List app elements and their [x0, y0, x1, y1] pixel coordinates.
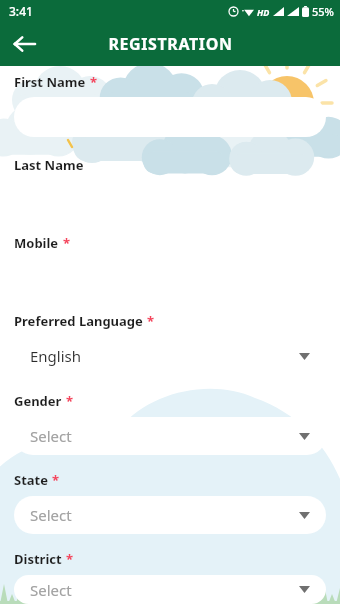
- button[interactable]: Select: [14, 575, 326, 604]
- staticText: REGISTRATION: [108, 33, 233, 55]
- staticText: 3:41: [9, 3, 33, 19]
- staticText: District: [14, 550, 62, 568]
- button[interactable]: Select: [14, 417, 326, 455]
- staticText: HD: [257, 6, 270, 18]
- staticText: First Name: [14, 73, 86, 91]
- button[interactable]: Select: [14, 496, 326, 534]
- staticText: Mobile: [14, 234, 59, 252]
- staticText: Preferred Language: [14, 312, 143, 330]
- staticText: *: [66, 550, 74, 568]
- staticText: *: [52, 471, 60, 489]
- staticText: *: [63, 234, 71, 252]
- button[interactable]: English: [14, 337, 326, 375]
- staticText: Select: [30, 580, 72, 600]
- staticText: *: [66, 392, 74, 410]
- staticText: Select: [30, 426, 72, 446]
- staticText: State: [14, 471, 48, 489]
- staticText: Select: [30, 505, 72, 525]
- staticText: 55%: [312, 4, 334, 19]
- button[interactable]: Back: [6, 26, 42, 62]
- staticText: *: [90, 73, 98, 91]
- button[interactable]: [14, 97, 326, 137]
- staticText: *: [147, 312, 155, 330]
- staticText: Gender: [14, 392, 62, 410]
- staticText: Last Name: [14, 156, 84, 174]
- staticText: English: [30, 346, 82, 366]
